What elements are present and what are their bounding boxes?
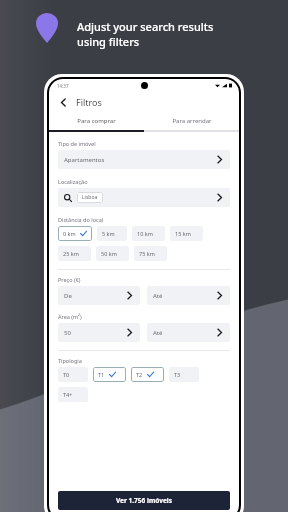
button[interactable]: 5 km: [97, 226, 127, 241]
button[interactable]: Para comprar: [49, 112, 144, 130]
button[interactable]: 50 km: [96, 246, 129, 261]
staticText: T3: [174, 371, 181, 378]
button[interactable]: Search: [58, 188, 230, 207]
staticText: 15 km: [175, 230, 191, 237]
staticText: 50: [64, 329, 71, 337]
button[interactable]: T1: [93, 367, 126, 382]
staticText: Para arrendar: [172, 117, 212, 125]
button[interactable]: Back: [56, 95, 70, 109]
button[interactable]: 15 km: [170, 226, 203, 241]
staticText: 0 km: [63, 230, 76, 237]
button[interactable]: 25 km: [58, 246, 91, 261]
staticText: 5 km: [102, 230, 115, 237]
staticText: T4+: [63, 391, 73, 398]
staticText: Filtros: [76, 96, 102, 108]
staticText: Tipologia: [58, 357, 82, 364]
button[interactable]: 50: [58, 323, 140, 342]
button[interactable]: De: [58, 286, 140, 305]
button[interactable]: Ver 1.756 imóveis: [58, 491, 230, 510]
button[interactable]: Até: [147, 286, 230, 305]
staticText: 50 km: [101, 250, 117, 257]
button[interactable]: Para arrendar: [144, 112, 239, 130]
staticText: Até: [153, 292, 163, 300]
staticText: Até: [153, 329, 163, 337]
staticText: T1: [98, 371, 105, 378]
staticText: Para comprar: [77, 117, 116, 125]
button[interactable]: T2: [131, 367, 164, 382]
staticText: 25 km: [63, 250, 79, 257]
staticText: Área (m²): [58, 313, 82, 320]
staticText: T2: [136, 371, 143, 378]
button[interactable]: 75 km: [134, 246, 167, 261]
staticText: Ver 1.756 imóveis: [116, 496, 172, 505]
staticText: Apartamentos: [64, 156, 105, 164]
button[interactable]: 0 km: [58, 226, 92, 241]
staticText: 75 km: [139, 250, 155, 257]
staticText: using filters: [77, 34, 140, 49]
staticText: Adjust your search results: [77, 19, 214, 34]
button[interactable]: Até: [147, 323, 230, 342]
staticText: T0: [63, 371, 70, 378]
staticText: Preço (€): [58, 276, 81, 283]
staticText: 10 km: [137, 230, 153, 237]
staticText: Distância do local: [58, 216, 104, 223]
staticText: De: [64, 292, 72, 300]
staticText: Tipo de imóvel: [58, 140, 96, 147]
button[interactable]: T0: [58, 367, 88, 382]
staticText: 14:37: [57, 83, 69, 89]
button[interactable]: T4+: [58, 387, 88, 402]
button[interactable]: T3: [169, 367, 199, 382]
staticText: Localização: [58, 178, 88, 185]
staticText: Lisboa: [82, 194, 98, 201]
button[interactable]: 10 km: [132, 226, 165, 241]
other: Search: [64, 194, 72, 202]
button[interactable]: Apartamentos: [58, 150, 230, 169]
